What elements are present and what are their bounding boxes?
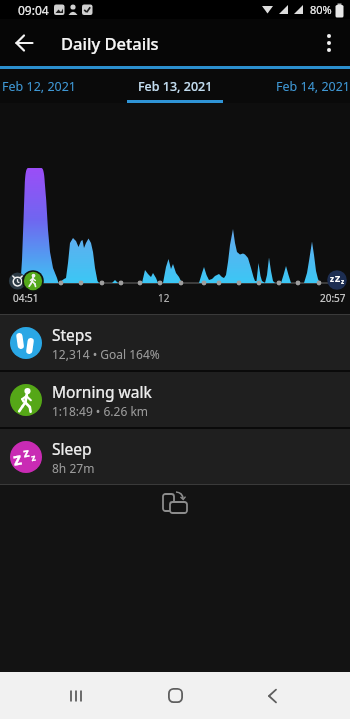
- button[interactable]: Morning walk: [0, 372, 350, 427]
- button[interactable]: [151, 672, 199, 719]
- staticText: 09:04: [18, 2, 49, 18]
- staticText: 12,314 • Goal 164%: [52, 346, 160, 362]
- staticText: z: [330, 273, 334, 284]
- button[interactable]: Feb 12, 2021: [0, 74, 76, 99]
- staticText: Daily Details: [61, 32, 159, 54]
- staticText: 1:18:49 • 6.26 km: [52, 403, 149, 419]
- button[interactable]: Feb 13, 2021: [134, 74, 217, 99]
- button[interactable]: [8, 26, 42, 60]
- button[interactable]: Feb 14, 2021: [276, 74, 350, 99]
- staticText: Steps: [52, 324, 92, 345]
- button[interactable]: Steps: [0, 315, 350, 370]
- staticText: Feb 13, 2021: [138, 78, 213, 95]
- staticText: 80%: [310, 2, 332, 17]
- staticText: 20:57: [320, 291, 346, 305]
- button[interactable]: z: [0, 429, 350, 484]
- staticText: Feb 14, 2021: [276, 78, 350, 95]
- staticText: z: [22, 444, 30, 460]
- staticText: z: [30, 451, 37, 463]
- staticText: Feb 12, 2021: [2, 78, 76, 95]
- staticText: 12: [158, 291, 170, 305]
- button[interactable]: [314, 28, 344, 58]
- staticText: 8h 27m: [52, 460, 95, 476]
- staticText: Sleep: [52, 438, 92, 459]
- staticText: Morning walk: [52, 381, 152, 402]
- button[interactable]: [248, 672, 296, 719]
- staticText: Z: [335, 272, 341, 284]
- button[interactable]: [159, 488, 191, 520]
- staticText: 04:51: [13, 291, 39, 305]
- button[interactable]: [52, 672, 100, 719]
- staticText: z: [11, 446, 24, 471]
- staticText: z: [341, 277, 345, 286]
